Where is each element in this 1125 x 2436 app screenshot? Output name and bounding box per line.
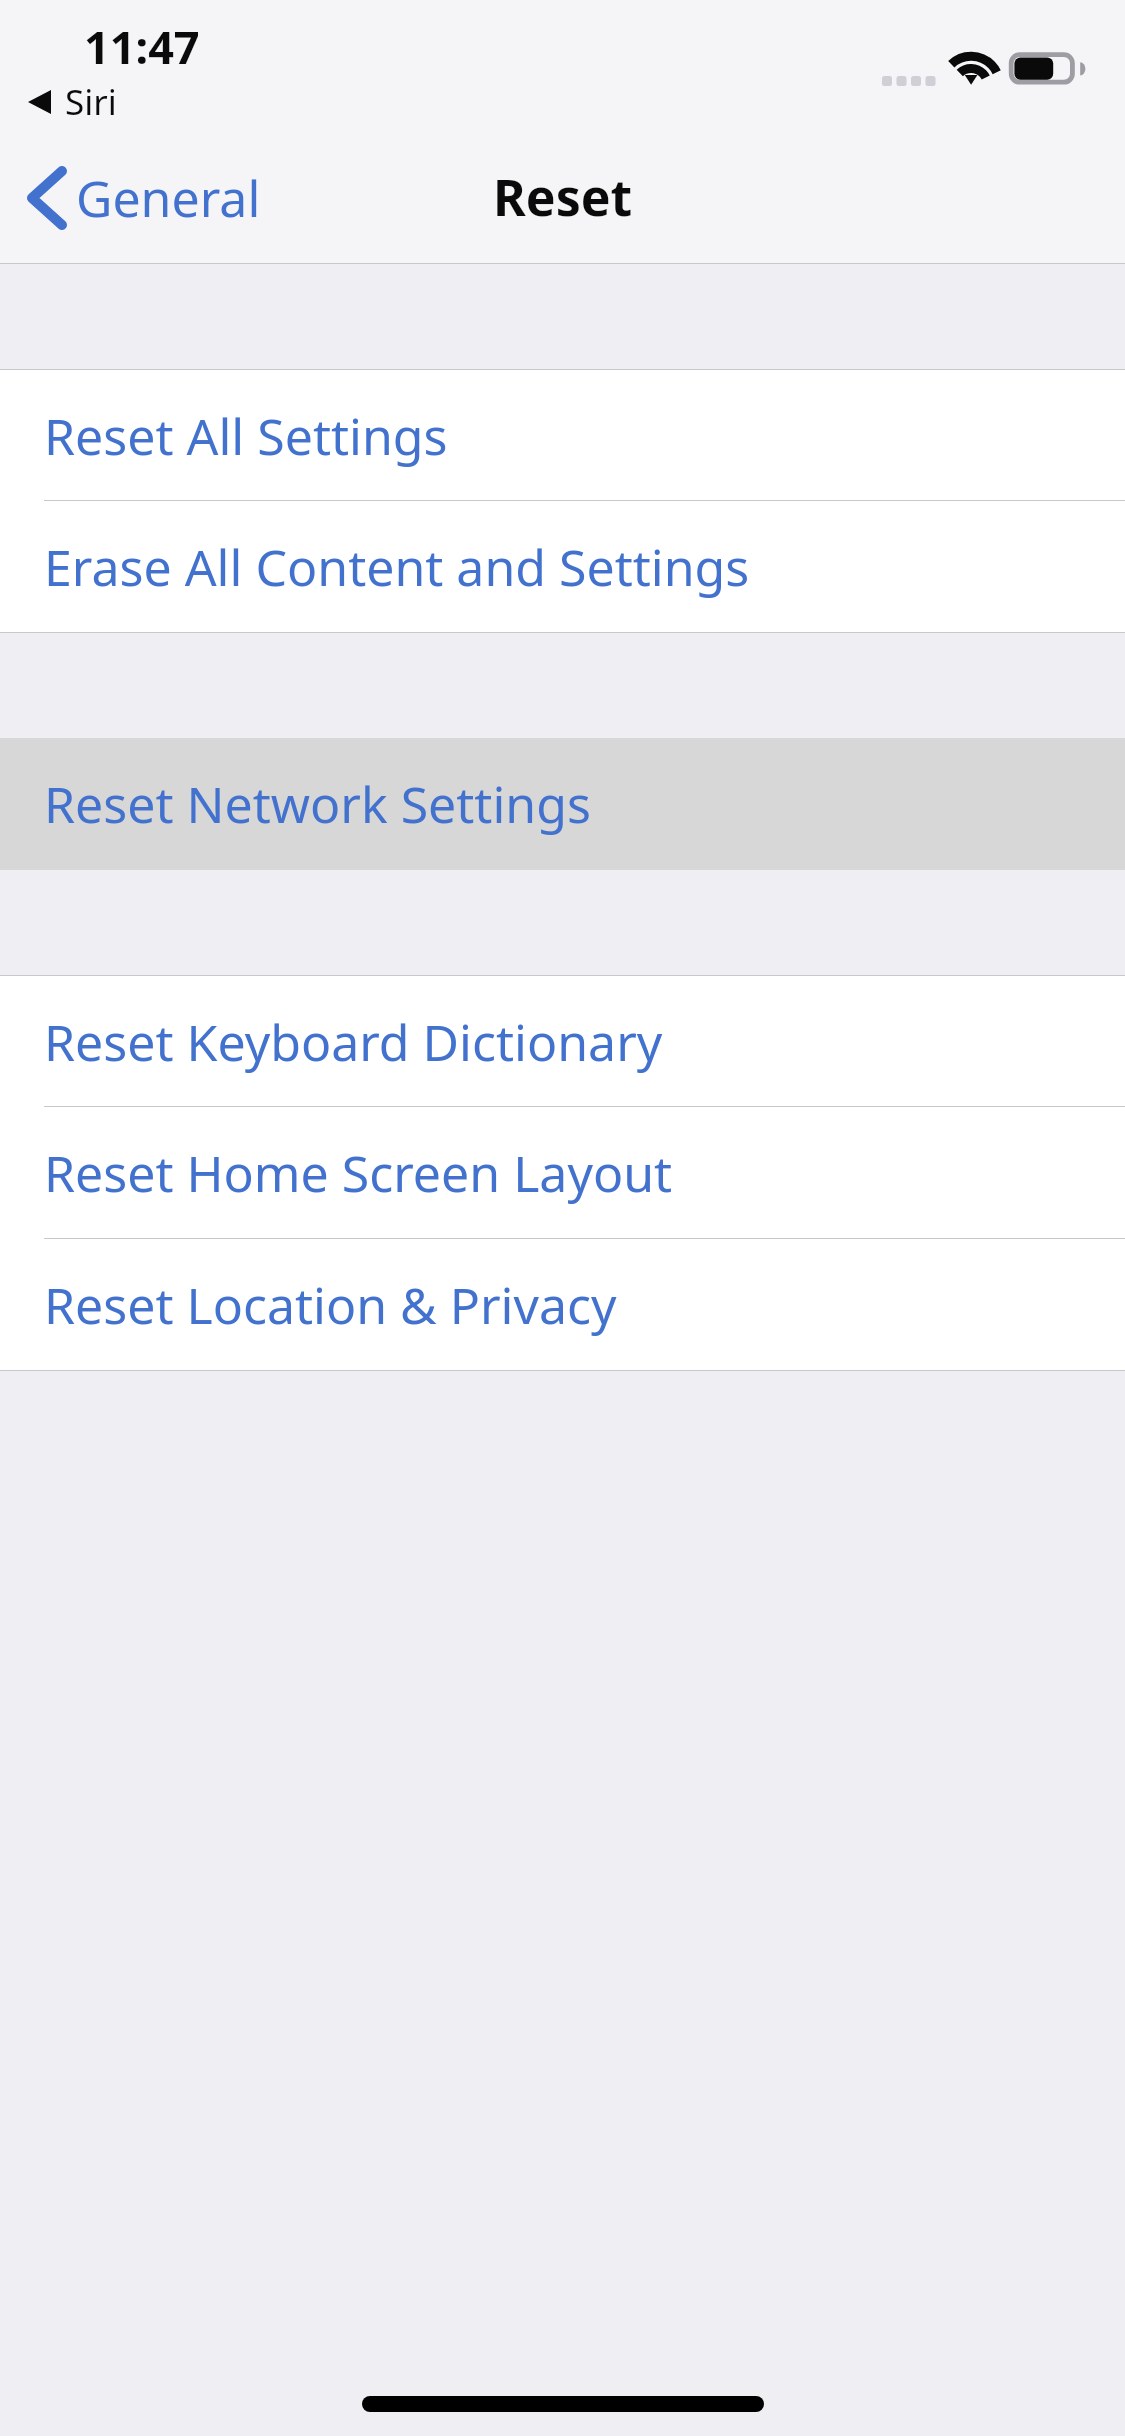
button[interactable]: Reset Keyboard Dictionary bbox=[0, 976, 1125, 1107]
staticText: Erase All Content and Settings bbox=[44, 533, 750, 601]
button[interactable]: Erase All Content and Settings bbox=[0, 501, 1125, 632]
staticText: Reset Keyboard Dictionary bbox=[44, 1008, 663, 1076]
button[interactable]: Reset Home Screen Layout bbox=[0, 1107, 1125, 1239]
button[interactable]: Reset All Settings bbox=[0, 370, 1125, 501]
staticText: Reset All Settings bbox=[44, 402, 448, 470]
button[interactable]: Reset Network Settings bbox=[0, 738, 1125, 870]
button[interactable]: General bbox=[0, 155, 285, 241]
staticText: Reset Home Screen Layout bbox=[44, 1139, 673, 1207]
button[interactable]: Reset Location & Privacy bbox=[0, 1239, 1125, 1370]
staticText: Reset bbox=[493, 163, 633, 231]
staticText: Siri bbox=[65, 78, 117, 126]
staticText: 11:47 bbox=[84, 16, 200, 77]
staticText: Reset Location & Privacy bbox=[44, 1271, 617, 1339]
button[interactable]: Back to Siri bbox=[28, 78, 117, 126]
staticText: General bbox=[76, 164, 261, 232]
staticText: Reset Network Settings bbox=[44, 770, 591, 838]
